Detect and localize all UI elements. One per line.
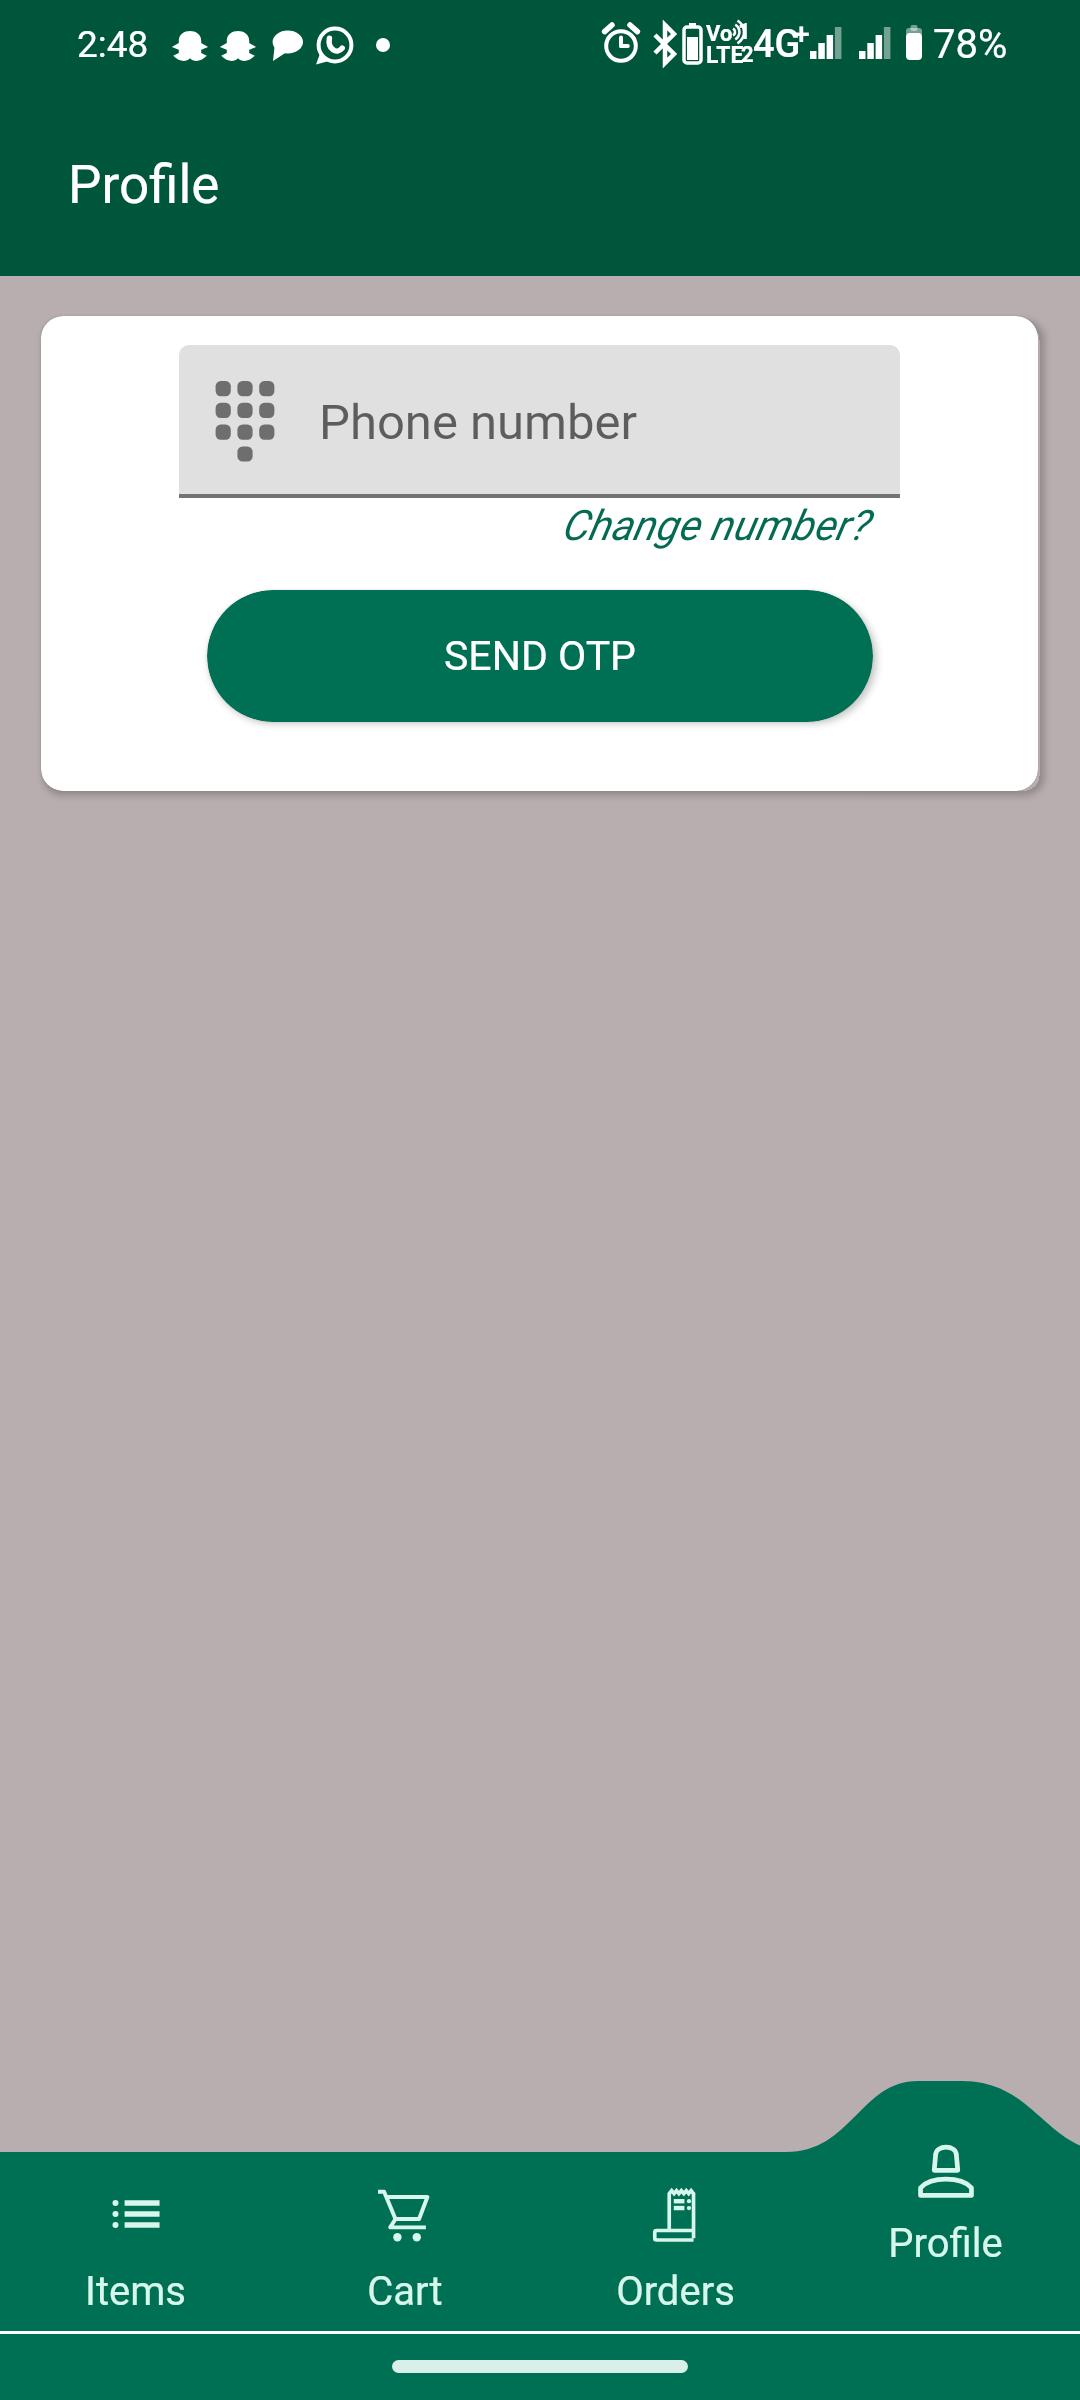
- staticText: 4G: [753, 22, 801, 67]
- button[interactable]: Change number?: [561, 501, 868, 550]
- staticText: LTE: [706, 42, 744, 69]
- staticText: 1: [738, 19, 751, 45]
- staticText: Items: [85, 2268, 186, 2315]
- button[interactable]: Orders: [540, 2176, 810, 2334]
- staticText: Profile: [888, 2220, 1003, 2267]
- staticText: 2: [741, 42, 754, 68]
- staticText: Orders: [616, 2268, 735, 2315]
- staticText: Profile: [68, 154, 220, 216]
- button[interactable]: Items: [0, 2176, 270, 2334]
- staticText: SEND OTP: [444, 632, 636, 680]
- staticText: Vo: [706, 21, 733, 47]
- staticText: 78%: [933, 21, 1008, 68]
- button[interactable]: Profile: [810, 2129, 1080, 2286]
- staticText: Phone number: [319, 394, 638, 451]
- button[interactable]: Cart: [270, 2176, 540, 2334]
- button[interactable]: SEND OTP: [207, 590, 873, 722]
- staticText: 2:48: [77, 23, 149, 66]
- button[interactable]: Phone number field: [179, 345, 900, 494]
- staticText: Cart: [367, 2268, 443, 2315]
- staticText: +: [793, 16, 810, 51]
